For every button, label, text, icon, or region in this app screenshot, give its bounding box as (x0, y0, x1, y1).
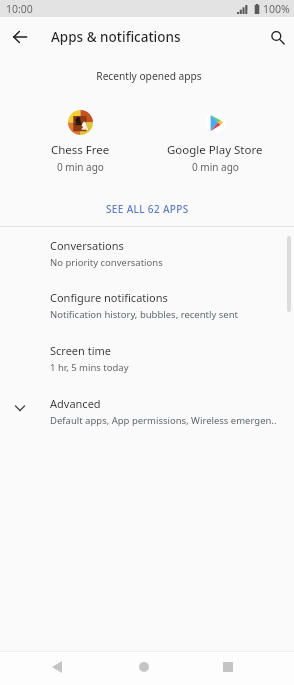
staticText: 0 min ago (57, 160, 104, 174)
button[interactable]: SEE ALL 62 APPS (96, 198, 199, 220)
staticText: Notification history, bubbles, recently … (50, 308, 238, 321)
staticText: Advanced (50, 396, 101, 411)
staticText: Screen time (50, 343, 112, 358)
button[interactable]: Home (127, 650, 161, 684)
staticText: Default apps, App permissions, Wireless … (50, 414, 277, 427)
staticText: Configure notifications (50, 290, 168, 305)
staticText: 0 min ago (192, 160, 239, 174)
button[interactable]: Search (261, 21, 293, 53)
staticText: 100% (263, 2, 290, 16)
staticText: Google Play Store (167, 142, 263, 158)
button[interactable]: Back (4, 21, 36, 53)
button[interactable]: Screen time (0, 337, 294, 389)
staticText: SEE ALL 62 APPS (106, 202, 189, 216)
staticText: Chess Free (51, 142, 110, 158)
button[interactable]: Chess Free (20, 103, 140, 174)
staticText: Recently opened apps (2, 69, 294, 83)
button[interactable]: Advanced (0, 390, 294, 442)
button[interactable]: Back (40, 650, 74, 684)
staticText: Conversations (50, 238, 124, 253)
button[interactable]: Recent apps (211, 650, 245, 684)
button[interactable]: Google Play Store (155, 103, 275, 174)
button[interactable]: Conversations (0, 232, 294, 284)
staticText: Apps & notifications (51, 28, 181, 46)
staticText: No priority conversations (50, 256, 163, 269)
button[interactable]: Configure notifications (0, 284, 294, 336)
staticText: 1 hr, 5 mins today (50, 361, 129, 374)
staticText: 10:00 (6, 2, 33, 16)
